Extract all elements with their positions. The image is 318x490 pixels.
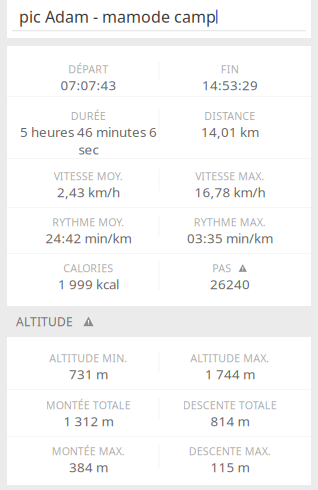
staticText: FIN bbox=[221, 62, 239, 76]
staticText: 03:35 min/km bbox=[187, 229, 273, 247]
button[interactable]: MONTÉE MAX. bbox=[7, 437, 311, 485]
staticText: DURÉE bbox=[71, 109, 106, 123]
button[interactable]: DÉPART bbox=[7, 46, 311, 96]
staticText: PAS bbox=[212, 261, 231, 275]
staticText: 16,78 km/h bbox=[194, 183, 265, 201]
staticText: VITESSE MOY. bbox=[54, 169, 123, 183]
staticText: 115 m bbox=[210, 458, 249, 476]
staticText: 384 m bbox=[69, 458, 108, 476]
button[interactable]: MONTÉE TOTALE bbox=[7, 390, 311, 436]
staticText: 1 999 kcal bbox=[58, 275, 119, 293]
staticText: pic Adam - mamode camp bbox=[19, 6, 216, 27]
staticText: 07:07:43 bbox=[60, 76, 116, 94]
staticText: DESCENTE TOTALE bbox=[183, 398, 277, 412]
button[interactable]: VITESSE MOY. bbox=[7, 159, 311, 207]
button[interactable]: ALTITUDE MIN. bbox=[7, 337, 311, 389]
staticText: RYTHME MOY. bbox=[52, 215, 124, 229]
button[interactable]: pic Adam - mamode camp bbox=[7, 0, 311, 38]
staticText: 24:42 min/km bbox=[45, 229, 131, 247]
staticText: 26240 bbox=[210, 275, 250, 293]
staticText: 814 m bbox=[210, 412, 249, 430]
staticText: DESCENTE MAX. bbox=[189, 444, 271, 458]
staticText: 5 heures 46 minutes 6 sec bbox=[20, 123, 157, 158]
staticText: 1 744 m bbox=[205, 365, 255, 383]
staticText: 14:53:29 bbox=[202, 76, 258, 94]
staticText: RYTHME MAX. bbox=[194, 215, 266, 229]
staticText: DISTANCE bbox=[204, 109, 255, 123]
staticText: 2,43 km/h bbox=[57, 183, 120, 201]
staticText: VITESSE MAX. bbox=[195, 169, 264, 183]
staticText: CALORIES bbox=[63, 261, 113, 275]
staticText: 14,01 km bbox=[201, 123, 259, 141]
staticText: MONTÉE MAX. bbox=[52, 444, 125, 458]
staticText: 731 m bbox=[69, 365, 108, 383]
button[interactable]: CALORIES bbox=[7, 254, 311, 306]
button[interactable]: DURÉE bbox=[7, 97, 311, 158]
staticText: ALTITUDE MAX. bbox=[190, 351, 269, 365]
staticText: ALTITUDE MIN. bbox=[49, 351, 127, 365]
button[interactable]: RYTHME MOY. bbox=[7, 208, 311, 253]
staticText: DÉPART bbox=[68, 62, 108, 76]
staticText: 1 312 m bbox=[63, 412, 113, 430]
staticText: MONTÉE TOTALE bbox=[46, 398, 131, 412]
staticText: ALTITUDE bbox=[16, 313, 73, 329]
